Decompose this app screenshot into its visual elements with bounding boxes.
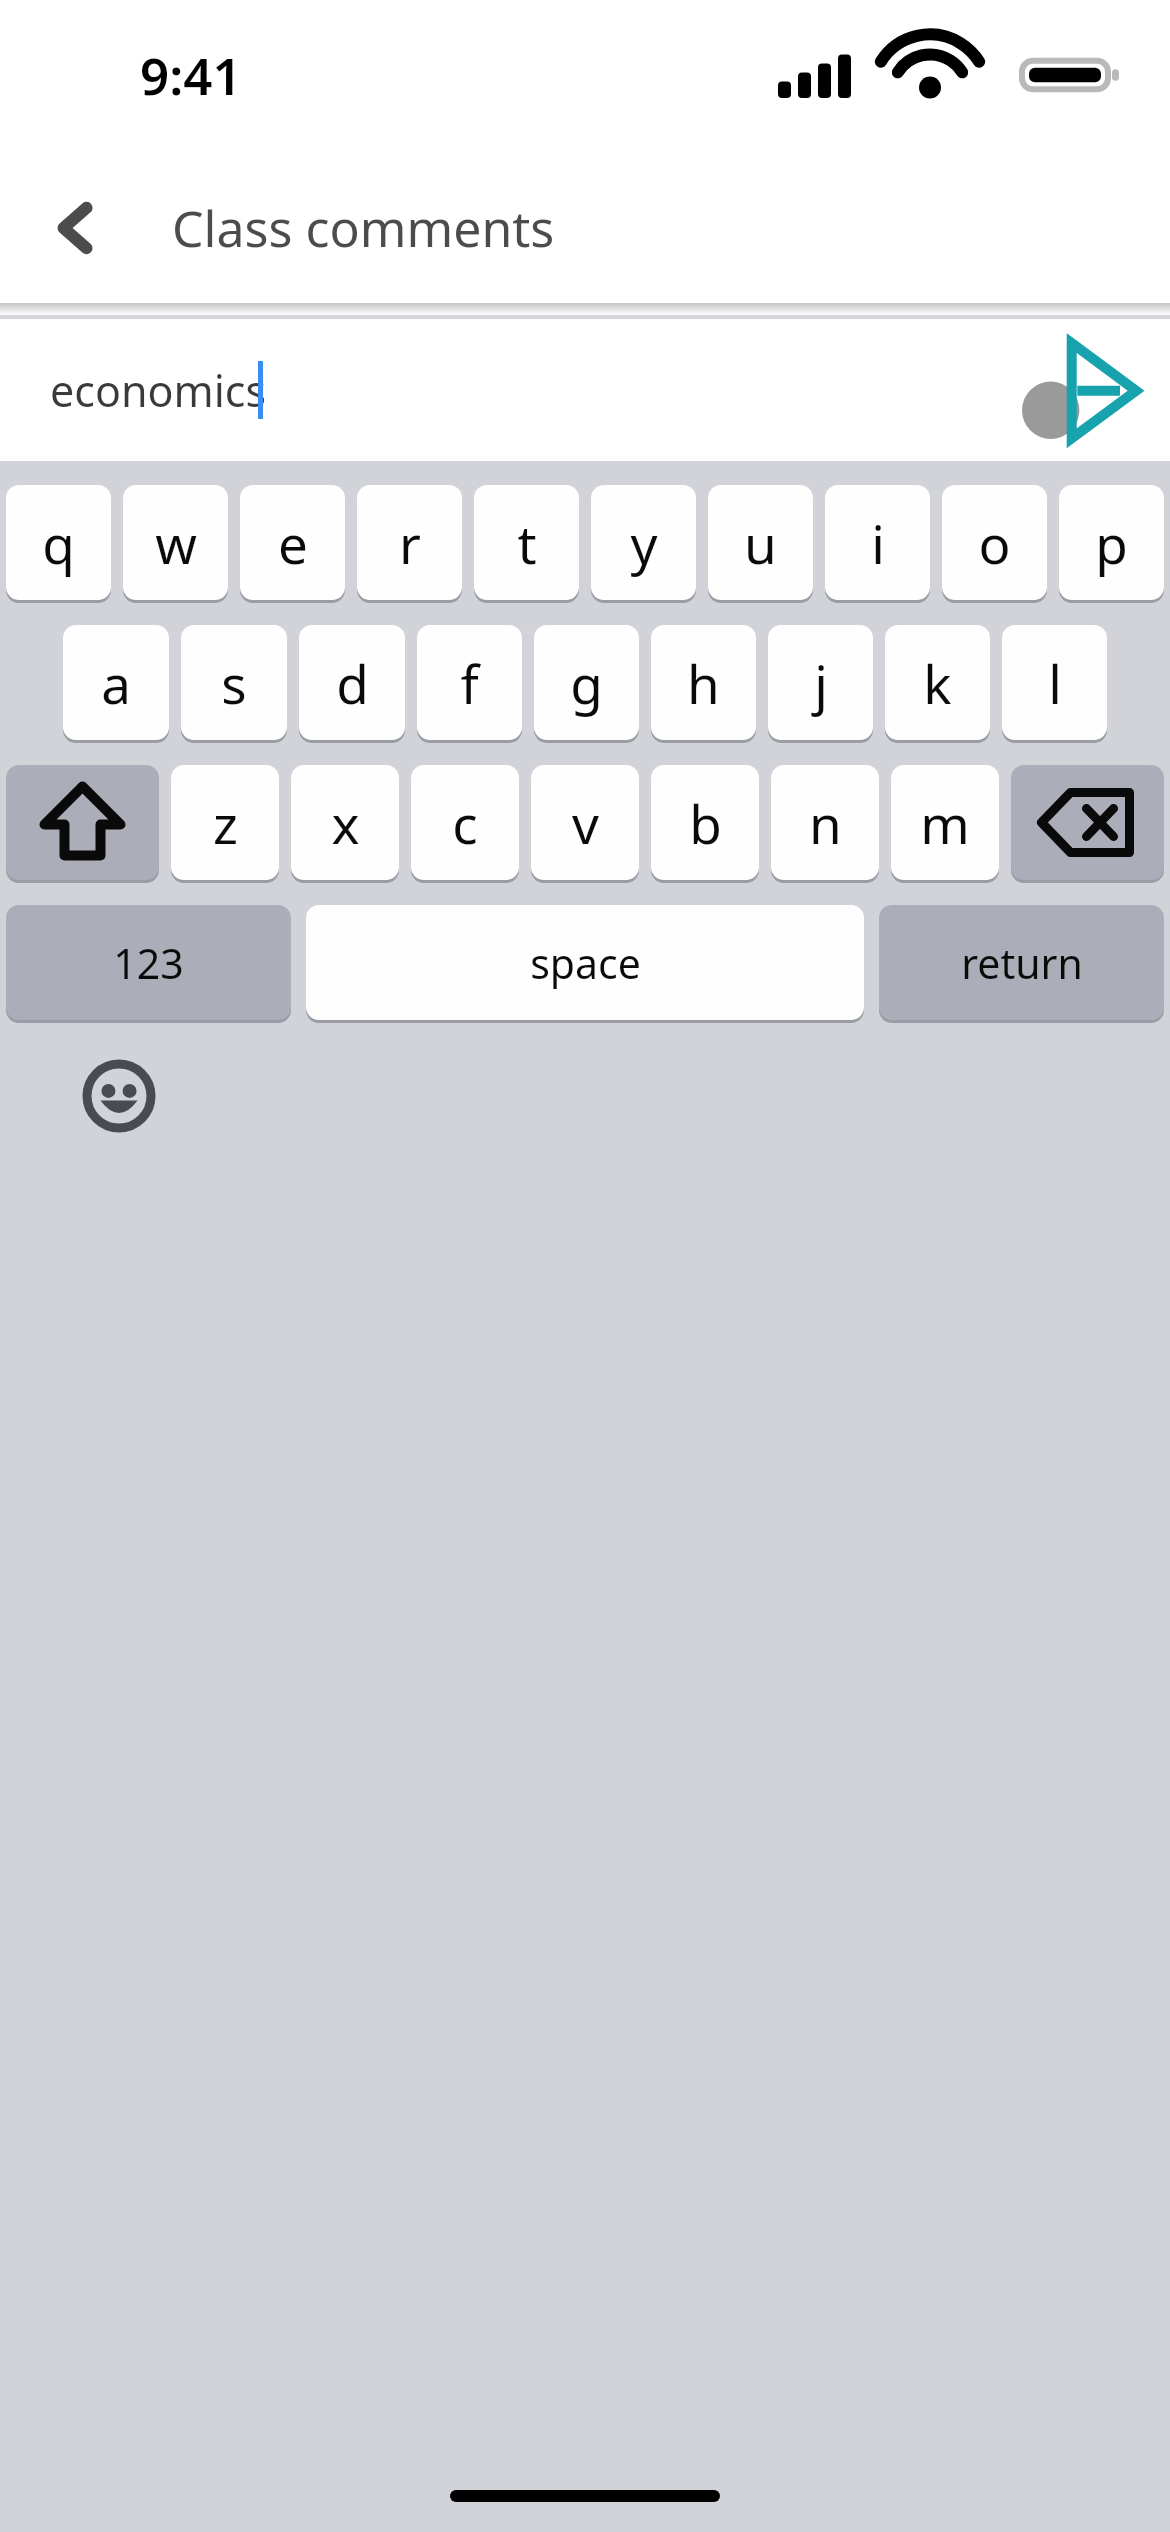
button[interactable]: t	[474, 485, 579, 600]
button[interactable]: r	[357, 485, 462, 600]
staticText: economics	[50, 361, 267, 420]
button[interactable]: p	[1059, 485, 1164, 600]
button[interactable]: 123	[6, 905, 291, 1020]
staticText: r	[399, 507, 421, 579]
staticText: e	[278, 507, 308, 579]
button[interactable]: l	[1002, 625, 1107, 740]
staticText: q	[42, 507, 75, 579]
button[interactable]: f	[417, 625, 522, 740]
staticText: m	[920, 787, 970, 859]
button[interactable]: return	[879, 905, 1164, 1020]
staticText: Class comments	[172, 194, 555, 262]
staticText: j	[814, 647, 828, 719]
staticText: 9:41	[140, 40, 242, 109]
staticText: l	[1048, 647, 1062, 719]
staticText: a	[101, 647, 131, 719]
button[interactable]: g	[534, 625, 639, 740]
button[interactable]: q	[6, 485, 111, 600]
staticText: x	[331, 787, 360, 859]
staticText: d	[336, 647, 369, 719]
button[interactable]: c	[411, 765, 519, 880]
button[interactable]: x	[291, 765, 399, 880]
button[interactable]: u	[708, 485, 813, 600]
button[interactable]: space	[306, 905, 864, 1020]
staticText: y	[630, 507, 658, 579]
staticText: u	[744, 507, 777, 579]
staticText: h	[687, 647, 720, 719]
button[interactable]: a	[63, 625, 169, 740]
button[interactable]: y	[591, 485, 696, 600]
staticText: s	[221, 647, 247, 719]
staticText: n	[809, 787, 842, 859]
button[interactable]: b	[651, 765, 759, 880]
button[interactable]: e	[240, 485, 345, 600]
staticText: g	[570, 647, 603, 719]
staticText: v	[572, 787, 599, 859]
button[interactable]: w	[123, 485, 228, 600]
staticText: space	[530, 935, 641, 991]
button[interactable]: Backspace	[1011, 765, 1164, 880]
staticText: f	[460, 647, 479, 719]
staticText: z	[213, 787, 238, 859]
button[interactable]: s	[181, 625, 287, 740]
staticText: b	[689, 787, 722, 859]
staticText: w	[155, 507, 197, 579]
staticText: c	[452, 787, 478, 859]
button[interactable]: Back	[28, 180, 124, 276]
staticText: o	[978, 507, 1011, 579]
button[interactable]: i	[825, 485, 930, 600]
button[interactable]: k	[885, 625, 990, 740]
button[interactable]: v	[531, 765, 639, 880]
button[interactable]: z	[171, 765, 279, 880]
staticText: i	[871, 507, 885, 579]
button[interactable]: Emoji keyboard	[76, 1053, 162, 1139]
staticText: 123	[113, 935, 184, 991]
button[interactable]: n	[771, 765, 879, 880]
button[interactable]: Shift	[6, 765, 159, 880]
staticText: return	[961, 935, 1083, 991]
button[interactable]: d	[299, 625, 405, 740]
staticText: k	[923, 647, 952, 719]
button[interactable]: Send	[1008, 320, 1148, 460]
button[interactable]: j	[768, 625, 873, 740]
button[interactable]: o	[942, 485, 1047, 600]
button[interactable]: m	[891, 765, 999, 880]
button[interactable]: h	[651, 625, 756, 740]
staticText: p	[1095, 507, 1128, 579]
staticText: t	[517, 507, 537, 579]
